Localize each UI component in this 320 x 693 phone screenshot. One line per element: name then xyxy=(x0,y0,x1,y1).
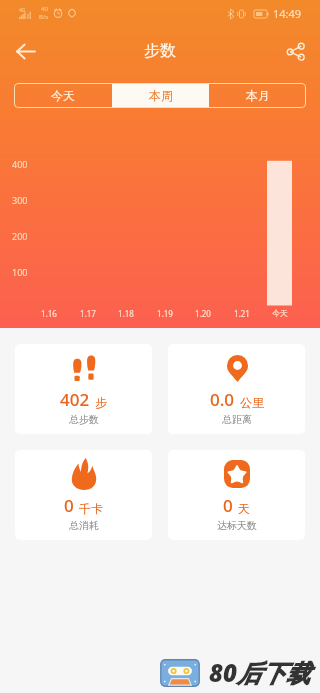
staticText: 1.18 xyxy=(118,308,134,319)
button[interactable]: 402 xyxy=(15,344,152,434)
staticText: 达标天数 xyxy=(217,519,257,532)
button[interactable]: 本月 xyxy=(209,83,306,108)
staticText: 1.16 xyxy=(41,308,57,319)
staticText: 402 xyxy=(60,388,90,411)
staticText: B/s xyxy=(39,13,49,21)
staticText: 步 xyxy=(95,395,107,410)
staticText: 本月 xyxy=(246,88,270,103)
staticText: 1.21 xyxy=(234,308,250,319)
staticText: 100 xyxy=(12,266,28,278)
staticText: 14:49 xyxy=(273,6,302,21)
staticText: 天 xyxy=(238,501,250,516)
staticText: 300 xyxy=(12,194,28,206)
staticText: 1.20 xyxy=(195,308,211,319)
button[interactable]: 今天 xyxy=(14,83,112,108)
button[interactable]: Share xyxy=(276,32,314,70)
staticText: 80后下载 xyxy=(209,656,310,689)
staticText: 0.0 xyxy=(210,388,235,411)
staticText: 4G xyxy=(19,7,26,14)
staticText: 千卡 xyxy=(79,501,103,516)
staticText: 0 xyxy=(223,494,233,517)
button[interactable]: 0 xyxy=(15,450,152,540)
staticText: 0 xyxy=(64,494,74,517)
button[interactable]: 0.0 xyxy=(168,344,305,434)
staticText: 1.19 xyxy=(157,308,173,319)
staticText: 总消耗 xyxy=(69,519,99,532)
staticText: 步数 xyxy=(144,41,176,61)
staticText: 总步数 xyxy=(69,413,99,426)
staticText: 40 xyxy=(41,5,48,13)
staticText: 今天 xyxy=(272,308,288,318)
staticText: 1.17 xyxy=(80,308,96,319)
staticText: 400 xyxy=(12,158,28,170)
staticText: 200 xyxy=(12,230,28,242)
staticText: 今天 xyxy=(51,88,75,103)
staticText: 本周 xyxy=(149,88,173,103)
button[interactable]: 0 xyxy=(168,450,305,540)
staticText: 总距离 xyxy=(222,413,252,426)
button[interactable]: Back xyxy=(6,32,44,70)
button[interactable]: 本周 xyxy=(112,83,209,108)
staticText: 公里 xyxy=(240,395,264,410)
